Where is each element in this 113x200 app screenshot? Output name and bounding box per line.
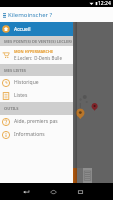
button[interactable]: Recent apps — [73, 184, 88, 199]
staticText: MES LISTES — [4, 68, 27, 73]
button[interactable]: Historique — [0, 76, 73, 89]
button[interactable]: Home — [46, 184, 61, 199]
button[interactable]: Informations — [0, 128, 73, 141]
staticText: 12:24 — [98, 0, 111, 7]
staticText: Historique — [14, 79, 39, 86]
staticText: Aide, premiers pas — [14, 118, 58, 125]
staticText: OUTILS — [4, 106, 19, 111]
button[interactable]: Aide, premiers pas — [0, 115, 73, 128]
staticText: MON HYPERMARCHE — [14, 49, 54, 54]
staticText: Kilemoinscher ? — [8, 11, 53, 19]
staticText: E.Leclerc D-Denis Bulle — [14, 55, 62, 61]
staticText: Accueil — [14, 26, 31, 33]
button[interactable]: Back — [19, 184, 34, 199]
button[interactable]: MON HYPERMARCHE — [0, 46, 73, 64]
staticText: Listes — [14, 92, 28, 99]
button[interactable]: Accueil — [0, 22, 73, 36]
staticText: Informations — [14, 131, 45, 138]
staticText: MES POINT(S) DE VENTE(S) LECLERC — [4, 39, 72, 44]
button[interactable]: Listes — [0, 89, 73, 102]
button[interactable]: Open navigation drawer — [0, 7, 8, 22]
